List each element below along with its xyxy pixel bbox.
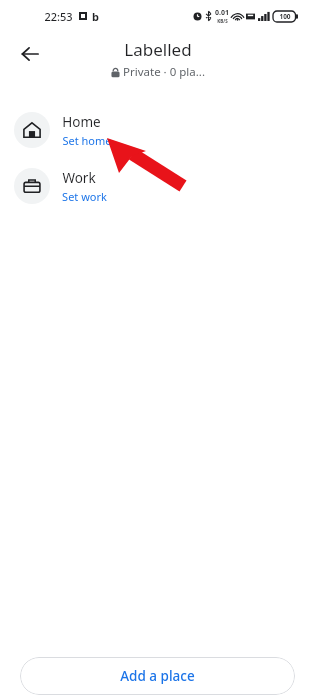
button[interactable]: Home (0, 102, 315, 158)
other: Home (14, 112, 50, 148)
staticText: Set home (62, 133, 112, 148)
button[interactable]: Work (0, 158, 315, 214)
staticText: 100 (279, 12, 291, 21)
staticText: Private · 0 pla... (123, 64, 205, 80)
other: Work (14, 168, 50, 204)
button[interactable]: Back (12, 36, 48, 72)
staticText: Labelled (124, 38, 192, 61)
staticText: Add a place (120, 667, 195, 685)
staticText: Set work (62, 189, 107, 204)
button[interactable]: Add a place (20, 657, 295, 695)
staticText: Work (62, 169, 96, 187)
staticText: b (92, 9, 99, 24)
staticText: Home (62, 113, 101, 131)
staticText: 0.01 (215, 8, 229, 18)
staticText: 22:53 (44, 9, 73, 24)
staticText: KB/S (217, 18, 228, 24)
